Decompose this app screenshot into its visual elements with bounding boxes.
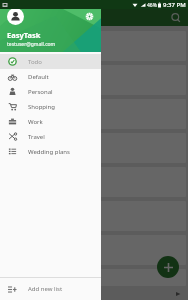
- button[interactable]: [2, 99, 186, 129]
- button[interactable]: Add new list: [0, 278, 101, 300]
- button[interactable]: [2, 235, 186, 265]
- staticText: Travel: [28, 133, 45, 141]
- button[interactable]: Settings: [85, 12, 94, 21]
- button[interactable]: Work: [0, 114, 101, 129]
- staticText: 46%: [147, 2, 157, 9]
- staticText: testuser@gmail.com: [7, 41, 56, 48]
- button[interactable]: [2, 167, 186, 197]
- button[interactable]: Back: [174, 290, 182, 298]
- button[interactable]: Shopping: [0, 99, 101, 114]
- button[interactable]: Personal: [0, 84, 101, 99]
- staticText: Work: [28, 118, 43, 126]
- button[interactable]: Add task: [157, 256, 179, 278]
- staticText: EasyTask: [7, 30, 41, 40]
- button[interactable]: [2, 65, 186, 95]
- button[interactable]: Travel: [0, 129, 101, 144]
- staticText: Default: [28, 73, 49, 81]
- button[interactable]: Default: [0, 69, 101, 84]
- staticText: Shopping: [28, 103, 55, 111]
- button[interactable]: [2, 269, 186, 286]
- button[interactable]: Profile: [7, 8, 24, 25]
- button[interactable]: Wedding plans: [0, 144, 101, 159]
- staticText: Add new list: [28, 285, 63, 293]
- staticText: 9:37 PM: [163, 1, 186, 9]
- button[interactable]: [2, 133, 186, 163]
- staticText: Wedding plans: [28, 148, 70, 156]
- button[interactable]: Todo: [0, 54, 101, 69]
- button[interactable]: [2, 201, 186, 231]
- staticText: Todo: [28, 58, 42, 66]
- button[interactable]: [2, 31, 186, 61]
- button[interactable]: [101, 0, 188, 300]
- button[interactable]: Search: [170, 12, 182, 24]
- staticText: Personal: [28, 88, 53, 96]
